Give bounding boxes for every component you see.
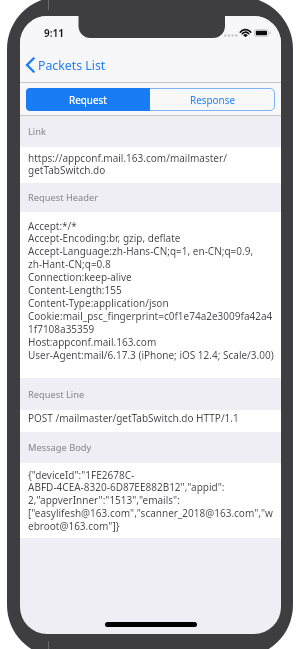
staticText: POST /mailmaster/getTabSwitch.do HTTP/1.…	[28, 411, 239, 425]
staticText: Message Body	[28, 441, 92, 454]
staticText: {"deviceId":"1FE2678C- ABFD-4CEA-8320-6D…	[28, 468, 273, 533]
staticText: Link	[28, 125, 46, 138]
button[interactable]: Request	[26, 88, 150, 111]
staticText: Response	[190, 93, 235, 106]
button[interactable]: Packets List	[20, 50, 116, 80]
staticText: Packets List	[38, 57, 106, 74]
staticText: Request	[69, 93, 107, 106]
button[interactable]: Response	[150, 88, 275, 111]
staticText: Accept:*/* Accept-Encoding:br, gzip, def…	[28, 219, 274, 362]
staticText: https://appconf.mail.163.com/mailmaster/…	[28, 151, 227, 177]
staticText: Request Header	[28, 191, 99, 204]
staticText: Request Line	[28, 388, 85, 401]
staticText: 9:11	[44, 26, 64, 40]
